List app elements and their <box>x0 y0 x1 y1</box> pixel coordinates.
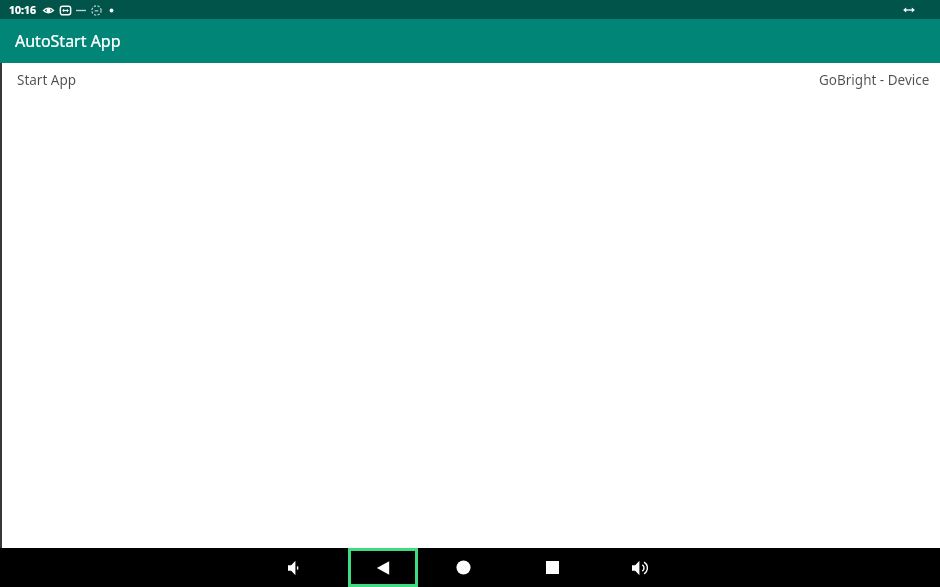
staticText: AutoStart App <box>15 30 121 52</box>
staticText: Start App <box>17 71 77 89</box>
button[interactable]: Resize window <box>902 5 916 15</box>
button[interactable]: Recent apps <box>508 548 596 587</box>
staticText: GoBright - Device <box>819 71 930 89</box>
button[interactable]: Back <box>348 548 418 587</box>
button[interactable]: Volume down <box>266 548 326 587</box>
button[interactable]: Home <box>418 548 508 587</box>
button[interactable]: Volume up <box>596 548 684 587</box>
staticText: 10:16 <box>9 3 36 17</box>
button[interactable]: Start App <box>0 63 940 97</box>
